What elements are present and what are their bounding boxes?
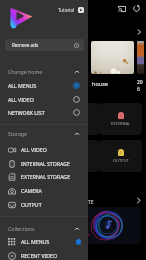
staticText: RECENT VIDEO: [21, 252, 58, 259]
button[interactable]: Collections: [0, 222, 88, 235]
staticText: CAMERA: [21, 187, 42, 194]
button[interactable]: CAMERA: [56, 140, 99, 172]
button[interactable]: Tutorial: [57, 4, 85, 16]
staticText: EXTERNAL: [111, 121, 131, 126]
button[interactable]: INTERNAL STORAGE: [0, 157, 88, 170]
button[interactable]: Remove ads: [5, 39, 84, 51]
staticText: ALL MENUS: [21, 238, 50, 245]
staticText: NETWORK LIST: [8, 109, 45, 116]
staticText: EXTERNAL STORAGE: [21, 173, 71, 180]
button[interactable]: OUTPUT: [0, 198, 88, 211]
staticText: house: [92, 80, 108, 87]
staticText: Tutorial: [58, 7, 75, 13]
button[interactable]: OUTPUT: [99, 140, 142, 172]
staticText: OUTPUT: [113, 158, 129, 163]
button[interactable]: [137, 41, 144, 74]
staticText: INTERNAL: [68, 121, 88, 126]
button[interactable]: ALL MENUS: [0, 79, 88, 92]
staticText: 20 6: [137, 79, 143, 92]
button[interactable]: ALL MENUS: [0, 235, 88, 248]
staticText: Change home: [8, 68, 43, 75]
button[interactable]: Cast: [115, 2, 128, 15]
staticText: INTERNAL STORAGE: [21, 160, 70, 167]
button[interactable]: CAMERA: [0, 184, 88, 197]
button[interactable]: [91, 41, 134, 74]
staticText: FAVORITE: [70, 198, 94, 205]
button[interactable]: App logo: [9, 7, 33, 31]
staticText: Collections: [8, 225, 35, 232]
button[interactable]: RECENT VIDEO: [0, 249, 88, 260]
button[interactable]: EXTERNAL STORAGE: [0, 170, 88, 183]
staticText: ALL VIDEO: [8, 96, 34, 103]
staticText: ALL MENUS: [8, 82, 37, 89]
button[interactable]: INTERNAL: [56, 103, 99, 135]
button[interactable]: See all music: [133, 195, 144, 206]
staticText: OUTPUT: [21, 201, 42, 208]
button[interactable]: Change home: [0, 65, 88, 78]
button[interactable]: ALL VIDEO: [0, 93, 88, 106]
button[interactable]: See all: [134, 27, 144, 37]
button[interactable]: Refresh: [130, 2, 143, 15]
staticText: ALL VIDEO: [21, 146, 47, 153]
staticText: Remove ads: [12, 42, 39, 48]
staticText: Storage: [8, 130, 27, 137]
button[interactable]: EXTERNAL: [99, 103, 142, 135]
button[interactable]: ALL VIDEO: [0, 143, 88, 156]
button[interactable]: [56, 207, 141, 244]
button[interactable]: NETWORK LIST: [0, 106, 88, 119]
button[interactable]: Storage: [0, 127, 88, 140]
